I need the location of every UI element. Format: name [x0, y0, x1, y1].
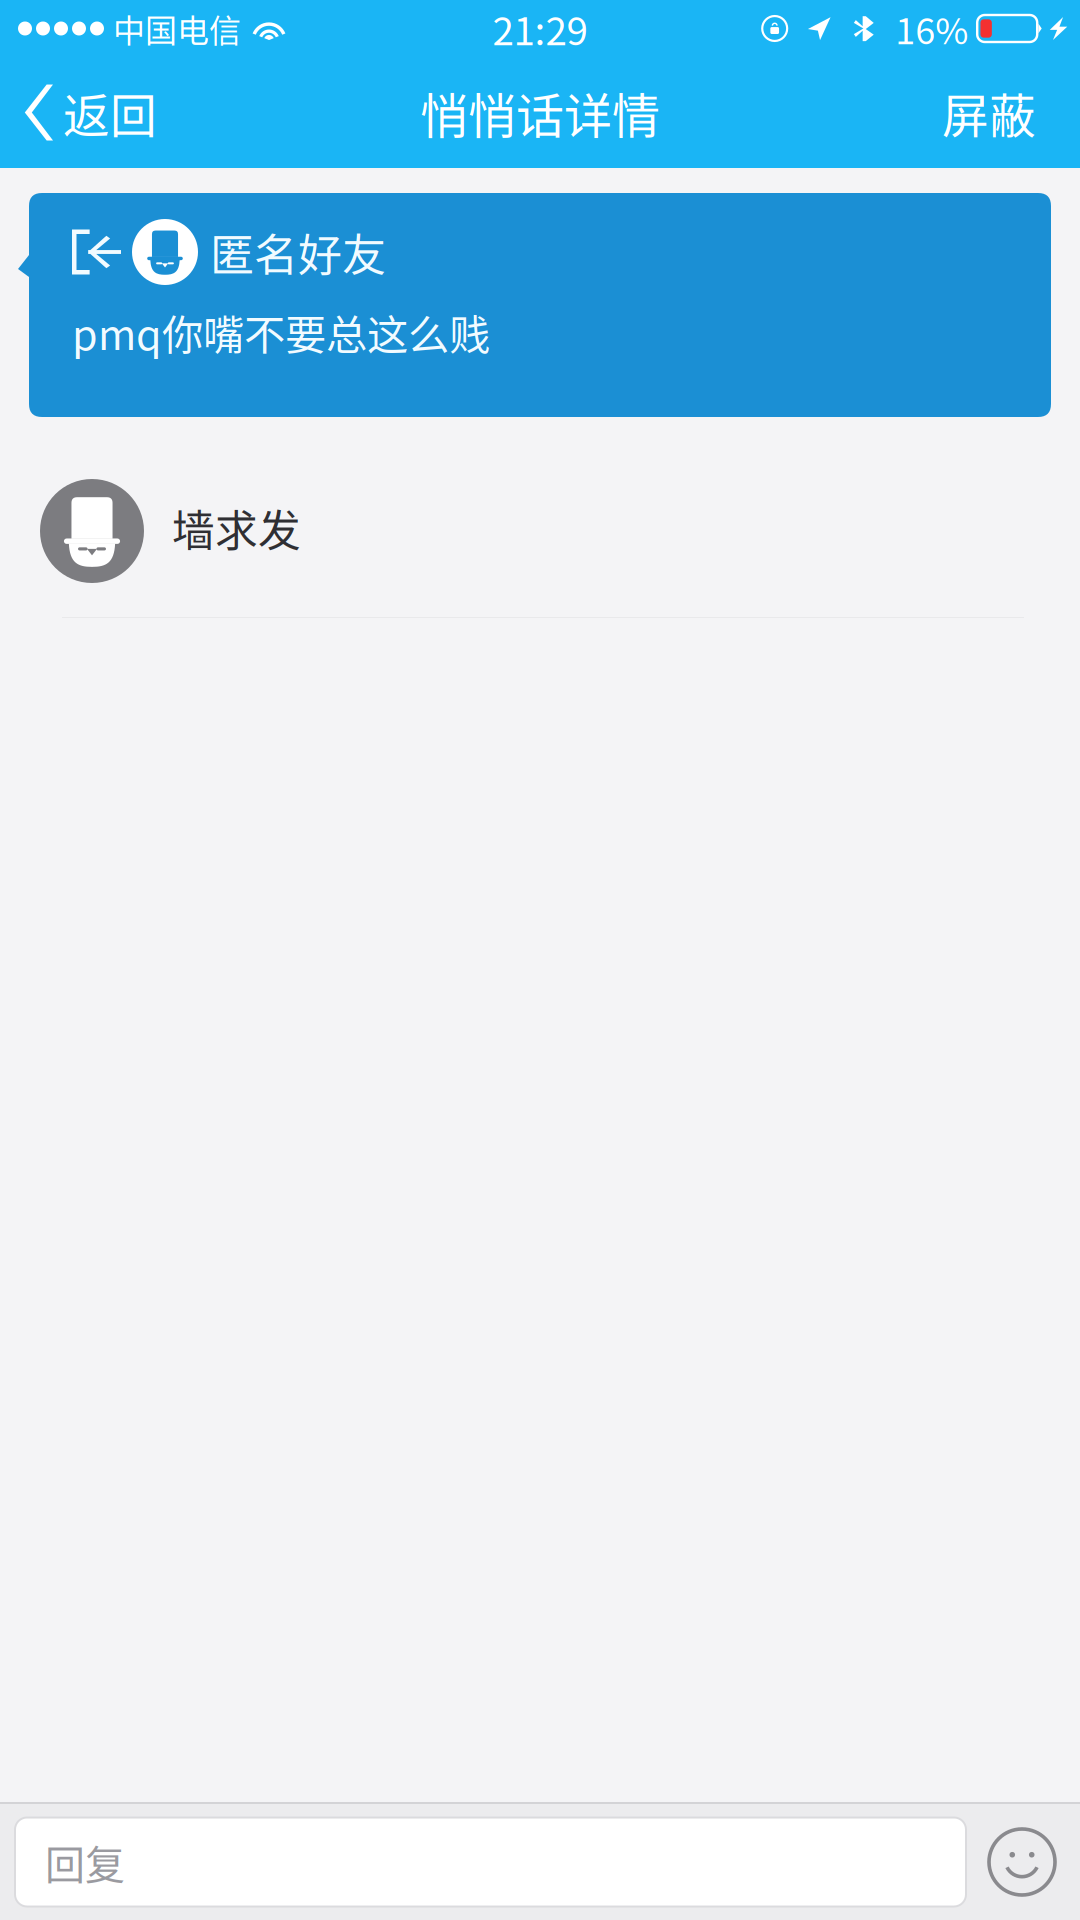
- button[interactable]: Emoji: [966, 1806, 1078, 1918]
- button[interactable]: 返回: [0, 57, 181, 168]
- staticText: 返回: [63, 79, 157, 146]
- staticText: 回复: [45, 1833, 125, 1891]
- staticText: 16%: [895, 2, 968, 54]
- staticText: 悄悄话详情: [420, 78, 660, 147]
- staticText: 屏蔽: [942, 79, 1036, 146]
- button[interactable]: 屏蔽: [914, 57, 1080, 168]
- button[interactable]: 回复: [15, 1817, 966, 1906]
- staticText: 21:29: [492, 0, 587, 56]
- staticText: 匿名好友: [210, 220, 386, 284]
- button[interactable]: 匿名好友: [0, 168, 1051, 417]
- button[interactable]: 墙求发: [0, 417, 1080, 618]
- staticText: 中国电信: [113, 5, 241, 52]
- staticText: pmq你嘴不要总这么贱: [72, 302, 490, 362]
- staticText: 墙求发: [172, 497, 301, 559]
